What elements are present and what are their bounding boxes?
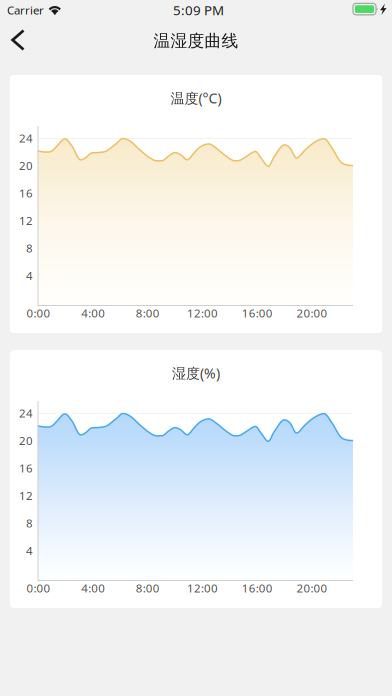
staticText: 24 [19, 405, 33, 421]
staticText: 24 [19, 130, 33, 146]
staticText: 20 [19, 158, 33, 173]
staticText: 12:00 [187, 580, 218, 596]
staticText: 20:00 [296, 305, 327, 321]
staticText: 8 [26, 515, 33, 531]
staticText: 湿度(%) [172, 363, 220, 383]
button[interactable]: Back [4, 24, 48, 56]
staticText: 4 [26, 543, 33, 558]
staticText: 5:09 PM [173, 1, 224, 19]
staticText: 12:00 [187, 305, 218, 321]
staticText: 16:00 [242, 580, 273, 596]
staticText: Carrier [7, 2, 44, 18]
staticText: 4 [26, 268, 33, 283]
staticText: 温湿度曲线 [153, 30, 238, 51]
staticText: 8:00 [136, 580, 160, 596]
staticText: 4:00 [81, 580, 105, 596]
staticText: 16 [19, 460, 33, 476]
staticText: 12 [19, 213, 33, 228]
staticText: 16:00 [242, 305, 273, 321]
staticText: 0:00 [26, 305, 50, 321]
staticText: 4:00 [81, 305, 105, 321]
staticText: 16 [19, 185, 33, 201]
staticText: 20:00 [296, 580, 327, 596]
staticText: 20 [19, 433, 33, 448]
staticText: 温度(°C) [170, 88, 221, 108]
staticText: 12 [19, 488, 33, 503]
staticText: 0:00 [26, 580, 50, 596]
staticText: 8:00 [136, 305, 160, 321]
staticText: 8 [26, 240, 33, 256]
